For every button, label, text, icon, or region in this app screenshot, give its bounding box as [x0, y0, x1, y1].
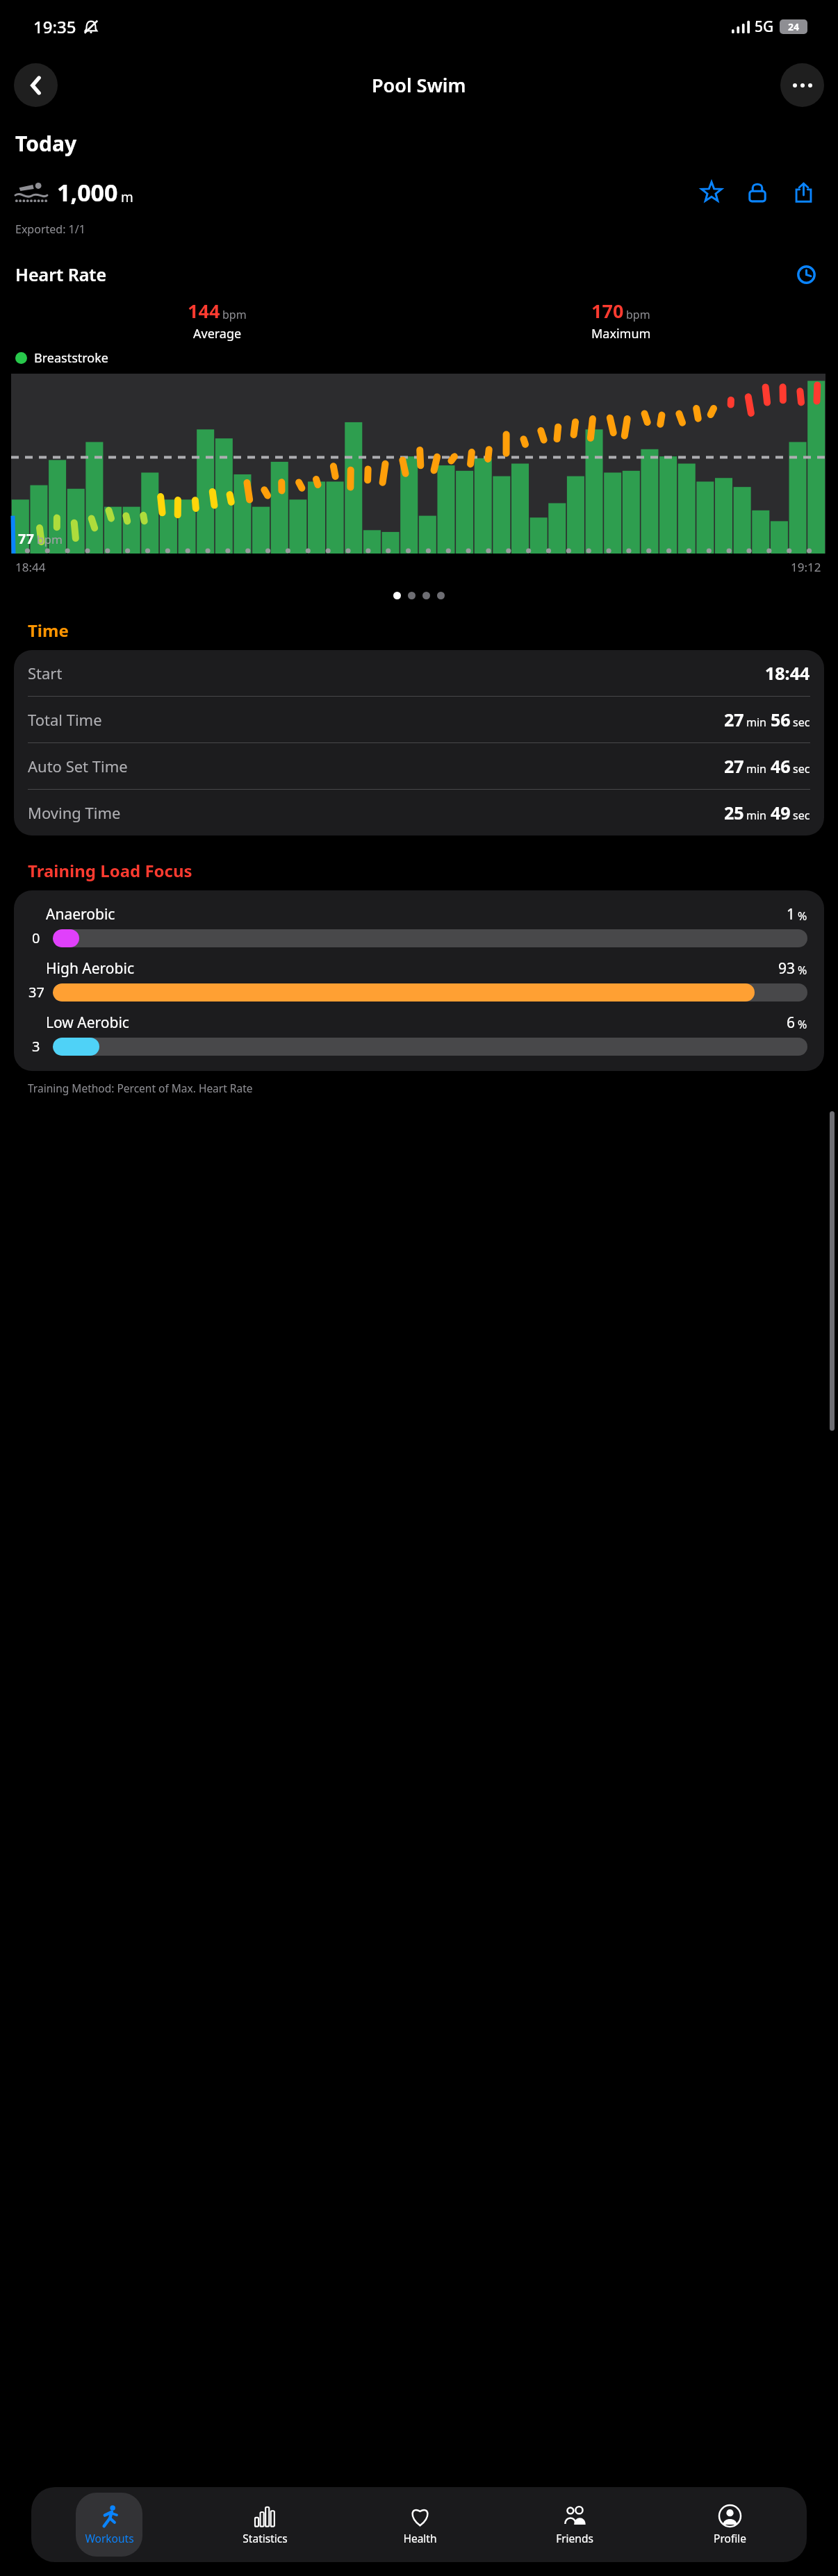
staticText: 77: [18, 529, 34, 548]
staticText: 18:44: [15, 559, 46, 575]
button[interactable]: History: [789, 258, 823, 291]
staticText: 49: [771, 801, 791, 824]
staticText: %: [798, 963, 807, 978]
staticText: Anaerobic: [46, 904, 115, 924]
staticText: m: [121, 188, 133, 206]
staticText: Moving Time: [28, 802, 121, 823]
staticText: min: [746, 808, 766, 823]
staticText: 24: [788, 20, 800, 33]
staticText: bpm: [222, 307, 247, 322]
staticText: 27: [724, 708, 744, 731]
staticText: %: [798, 1017, 807, 1032]
button[interactable]: Share: [784, 173, 823, 212]
button[interactable]: Statistics: [231, 2493, 298, 2557]
staticText: 46: [771, 754, 791, 778]
staticText: Total Time: [28, 709, 102, 730]
staticText: Pool Swim: [372, 72, 466, 98]
staticText: 1: [787, 904, 796, 924]
staticText: 27: [724, 754, 744, 778]
button[interactable]: Auto Set Time: [14, 743, 824, 789]
staticText: Breaststroke: [34, 349, 108, 367]
staticText: Training Load Focus: [28, 859, 192, 882]
staticText: 1,000: [57, 176, 118, 208]
staticText: min: [746, 715, 766, 730]
staticText: Heart Rate: [15, 263, 107, 286]
staticText: Time: [28, 619, 69, 642]
staticText: bpm: [37, 531, 63, 547]
staticText: Training Method: Percent of Max. Heart R…: [28, 1081, 253, 1095]
staticText: Auto Set Time: [28, 756, 128, 776]
button[interactable]: Favorite: [692, 173, 731, 212]
staticText: Health: [403, 2531, 437, 2545]
staticText: 93: [778, 958, 796, 979]
staticText: sec: [793, 761, 810, 776]
staticText: 6: [787, 1013, 796, 1033]
button[interactable]: Back: [14, 63, 58, 107]
button[interactable]: High Aerobic: [14, 958, 824, 1002]
staticText: 19:35: [33, 15, 76, 38]
staticText: 18:44: [765, 661, 810, 685]
staticText: Maximum: [591, 325, 651, 342]
button[interactable]: Anaerobic: [14, 904, 824, 947]
button[interactable]: Profile: [696, 2493, 763, 2557]
staticText: bpm: [626, 307, 650, 322]
button[interactable]: Health: [386, 2493, 453, 2557]
staticText: Friends: [556, 2531, 593, 2545]
staticText: 170: [591, 298, 624, 324]
staticText: 0: [32, 929, 40, 947]
button[interactable]: Lock: [738, 173, 777, 212]
staticText: sec: [793, 808, 810, 823]
staticText: 56: [771, 708, 791, 731]
button[interactable]: Moving Time: [14, 790, 824, 836]
staticText: min: [746, 761, 766, 776]
staticText: High Aerobic: [46, 958, 134, 979]
staticText: sec: [793, 715, 810, 730]
staticText: %: [798, 908, 807, 924]
staticText: 37: [28, 983, 44, 1002]
staticText: 5G: [755, 17, 774, 37]
staticText: Today: [15, 129, 77, 158]
staticText: Workouts: [85, 2531, 134, 2545]
staticText: 3: [32, 1037, 40, 1056]
staticText: Statistics: [243, 2531, 288, 2545]
button[interactable]: Low Aerobic: [14, 1013, 824, 1056]
staticText: Profile: [714, 2531, 746, 2545]
staticText: 144: [188, 298, 220, 324]
staticText: Exported: 1/1: [15, 222, 85, 237]
button[interactable]: Start: [14, 650, 824, 696]
button[interactable]: Workouts: [76, 2493, 142, 2557]
button[interactable]: Total Time: [14, 697, 824, 742]
staticText: 19:12: [791, 559, 821, 575]
button[interactable]: More options: [780, 63, 824, 107]
staticText: Low Aerobic: [46, 1013, 129, 1033]
staticText: 25: [724, 801, 744, 824]
staticText: Start: [28, 663, 63, 683]
button[interactable]: Friends: [541, 2493, 608, 2557]
staticText: Average: [193, 325, 242, 342]
